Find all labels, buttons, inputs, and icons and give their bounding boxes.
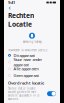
button[interactable]: Dit apparaat: [4, 52, 60, 59]
staticText: ‹: [8, 3, 10, 12]
button[interactable]: Geen apparaat: [4, 72, 60, 79]
staticText: Overdracht locatie: [8, 80, 44, 86]
button[interactable]: Back: [7, 5, 12, 10]
button[interactable]: Alle apparaten: [4, 65, 60, 72]
staticText: Stuur naar ander apparaat: [13, 57, 42, 67]
staticText: Samsung Galaxy: [22, 40, 41, 43]
staticText: Sta toe dat je locatie wordt gedeeld met…: [8, 87, 40, 101]
button[interactable]: Locatie delen: [47, 91, 56, 96]
button[interactable]: Stuur naar ander apparaat: [4, 59, 60, 65]
staticText: Alle apparaten: [13, 66, 38, 71]
staticText: 9:41: [8, 0, 15, 5]
staticText: Rechten Locatie: [8, 11, 34, 29]
staticText: TRANSFER TO ANOTHER DEVICE: [8, 48, 47, 52]
staticText: Dit apparaat: [13, 53, 34, 58]
staticText: Geen apparaat: [13, 73, 38, 78]
